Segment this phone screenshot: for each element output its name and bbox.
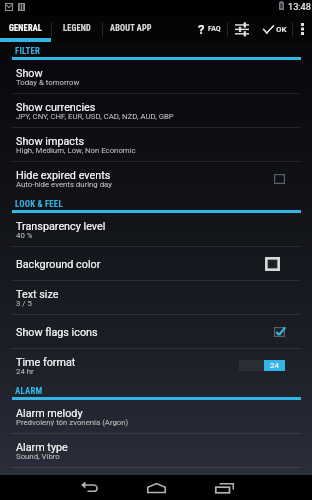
staticText: Today & tomorrow	[16, 78, 80, 87]
staticText: Alarm type	[16, 441, 68, 454]
button[interactable]: OK	[256, 16, 292, 42]
staticText: 40 %	[16, 231, 33, 240]
staticText: Predvolený tón zvonenia (Argon)	[16, 418, 129, 427]
staticText: Text size	[16, 288, 59, 301]
staticText: Auto-hide events during day	[16, 180, 112, 189]
button[interactable]: Time format	[0, 349, 312, 383]
staticText: ALARM	[15, 386, 43, 396]
button[interactable]: Text size	[0, 281, 312, 315]
staticText: Alarm melody	[16, 407, 83, 420]
staticText: ?	[198, 22, 205, 37]
staticText: JPY, CNY, CHF, EUR, USD, CAD, NZD, AUD, …	[16, 112, 174, 121]
staticText: LOOK & FEEL	[15, 199, 63, 209]
button[interactable]: Hide expired events	[0, 162, 312, 196]
staticText: 24 hr	[16, 367, 34, 376]
button[interactable]: Show impacts	[0, 128, 312, 162]
staticText: GENERAL	[9, 23, 42, 33]
staticText: Hide expired events	[16, 169, 111, 182]
button[interactable]: ABOUT APP	[103, 16, 159, 42]
staticText: Background color	[16, 258, 101, 271]
button[interactable]: GENERAL	[0, 16, 51, 42]
staticText: LEGEND	[63, 23, 91, 33]
button[interactable]: ?	[190, 16, 227, 42]
staticText: Transparency level	[16, 220, 106, 233]
staticText: FILTER	[15, 46, 41, 56]
button[interactable]: Home	[122, 475, 190, 500]
button[interactable]: Show currencies	[0, 94, 312, 128]
staticText: OK	[276, 25, 287, 34]
button[interactable]: Alarm melody	[0, 400, 312, 434]
button[interactable]: Filters	[228, 16, 256, 42]
button[interactable]: Alarm type	[0, 434, 312, 468]
staticText: Show currencies	[16, 101, 96, 114]
staticText: Sound, Vibro	[16, 452, 60, 461]
staticText: Time format	[16, 356, 76, 369]
button[interactable]: Back	[55, 475, 123, 500]
button[interactable]: LEGEND	[52, 16, 102, 42]
staticText: Show	[16, 67, 43, 80]
staticText: 3 / 5	[16, 299, 32, 308]
button[interactable]: Recents	[190, 475, 258, 500]
staticText: Show flags icons	[16, 326, 98, 339]
button[interactable]: Background color	[0, 247, 312, 281]
staticText: FAQ	[208, 25, 221, 33]
staticText: High, Medium, Low, Non Economic	[16, 146, 136, 155]
staticText: ABOUT APP	[110, 23, 152, 33]
button[interactable]: More options	[293, 16, 312, 42]
staticText: Show impacts	[16, 135, 85, 148]
button[interactable]: Transparency level	[0, 213, 312, 247]
button[interactable]: Show flags icons	[0, 315, 312, 349]
button[interactable]: Show	[0, 60, 312, 94]
staticText: 13:48	[288, 1, 311, 12]
staticText: 24	[270, 361, 279, 370]
